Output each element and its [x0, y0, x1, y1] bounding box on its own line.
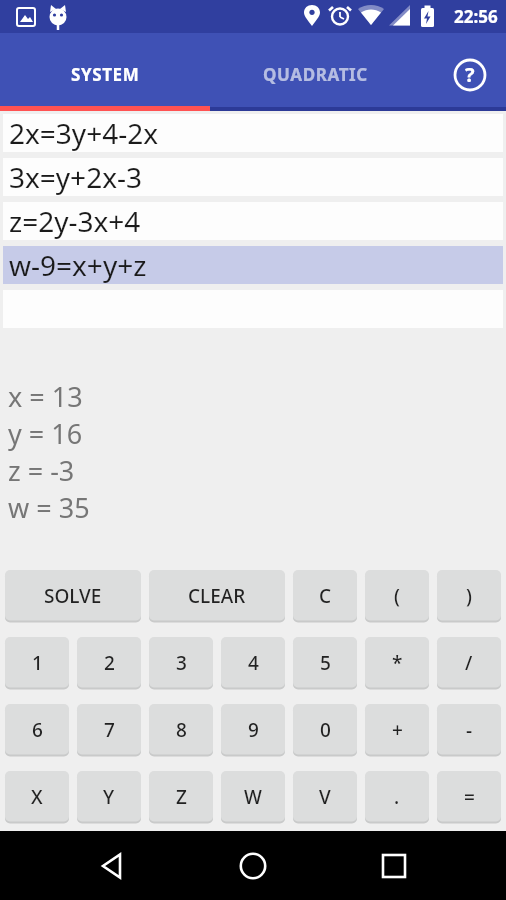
button[interactable]: CLEAR	[149, 570, 285, 622]
staticText: )	[466, 583, 472, 609]
button[interactable]: X	[5, 771, 69, 823]
staticText: z=2y-3x+4	[9, 202, 141, 240]
button[interactable]: 5	[293, 637, 357, 689]
button[interactable]: V	[293, 771, 357, 823]
staticText: w = 35	[8, 489, 90, 526]
button[interactable]: (	[365, 570, 429, 622]
staticText: SYSTEM	[71, 63, 140, 86]
staticText: x = 13	[8, 378, 83, 415]
staticText: 7	[104, 717, 115, 743]
staticText: 3	[176, 650, 187, 676]
staticText: 8	[176, 717, 187, 743]
button[interactable]: 7	[77, 704, 141, 756]
button[interactable]	[370, 842, 418, 890]
staticText: 6	[32, 717, 43, 743]
button[interactable]: )	[437, 570, 501, 622]
staticText: .	[394, 784, 400, 810]
button[interactable]: =	[437, 771, 501, 823]
button[interactable]: -	[437, 704, 501, 756]
staticText: =	[464, 784, 475, 810]
button[interactable]: W	[221, 771, 285, 823]
button[interactable]: C	[293, 570, 357, 622]
button[interactable]: w-9=x+y+z	[3, 246, 503, 284]
staticText: V	[319, 784, 331, 810]
staticText: W	[244, 784, 262, 810]
staticText: 0	[320, 717, 331, 743]
button[interactable]: 9	[221, 704, 285, 756]
button[interactable]: Y	[77, 771, 141, 823]
button[interactable]: .	[365, 771, 429, 823]
staticText: ?	[465, 61, 475, 88]
button[interactable]: 6	[5, 704, 69, 756]
button[interactable]: +	[365, 704, 429, 756]
button[interactable]: 8	[149, 704, 213, 756]
button[interactable]	[229, 842, 277, 890]
staticText: 9	[248, 717, 259, 743]
button[interactable]	[88, 842, 136, 890]
button[interactable]: QUADRATIC	[210, 33, 421, 111]
staticText: 1	[32, 650, 43, 676]
staticText: y = 16	[8, 415, 83, 452]
button[interactable]: ?	[453, 58, 487, 92]
button[interactable]: SYSTEM	[0, 33, 210, 111]
staticText: +	[392, 717, 403, 743]
staticText: 5	[320, 650, 331, 676]
staticText: -	[466, 717, 473, 743]
button[interactable]: 3x=y+2x-3	[3, 158, 503, 196]
staticText: (	[394, 583, 400, 609]
button[interactable]: 4	[221, 637, 285, 689]
staticText: /	[465, 650, 473, 676]
button[interactable]: z=2y-3x+4	[3, 202, 503, 240]
button[interactable]: *	[365, 637, 429, 689]
staticText: SOLVE	[44, 583, 102, 609]
staticText: w-9=x+y+z	[9, 246, 147, 284]
staticText: z = -3	[8, 452, 75, 489]
button[interactable]: SOLVE	[5, 570, 141, 622]
button[interactable]: Z	[149, 771, 213, 823]
staticText: *	[392, 650, 403, 676]
staticText: CLEAR	[188, 583, 246, 609]
button[interactable]: 0	[293, 704, 357, 756]
button[interactable]: /	[437, 637, 501, 689]
staticText: C	[319, 583, 332, 609]
staticText: X	[31, 784, 43, 810]
staticText: 2x=3y+4-2x	[9, 114, 159, 152]
staticText: 2	[104, 650, 115, 676]
button[interactable]: 3	[149, 637, 213, 689]
staticText: Z	[176, 784, 187, 810]
staticText: 22:56	[454, 5, 498, 28]
staticText: QUADRATIC	[263, 63, 368, 86]
staticText: 4	[248, 650, 259, 676]
button[interactable]: 2x=3y+4-2x	[3, 114, 503, 152]
staticText: Y	[103, 784, 115, 810]
button[interactable]: 2	[77, 637, 141, 689]
button[interactable]: 1	[5, 637, 69, 689]
staticText: 3x=y+2x-3	[9, 158, 143, 196]
